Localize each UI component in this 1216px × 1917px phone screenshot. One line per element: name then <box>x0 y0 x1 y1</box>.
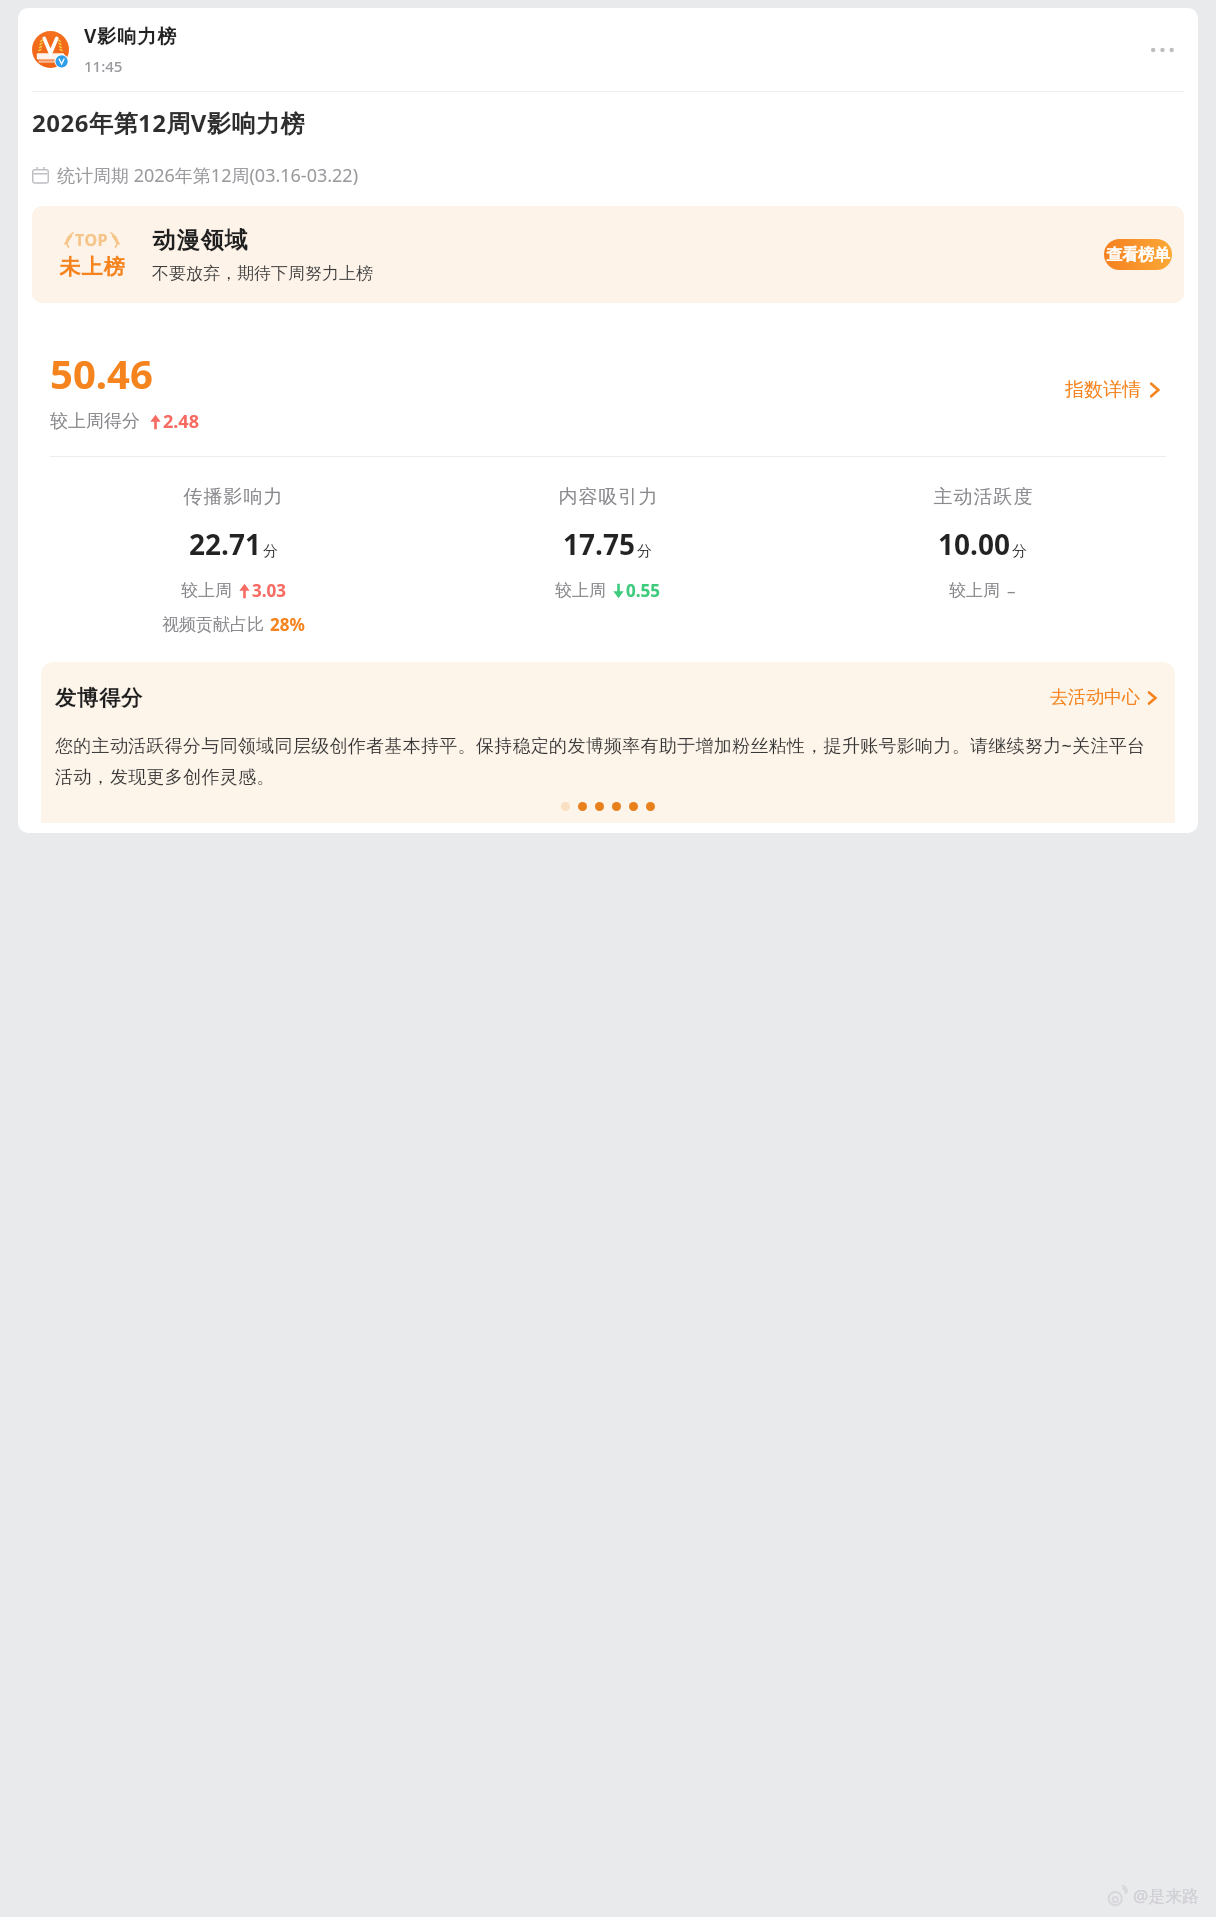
staticText: 发博得分 <box>55 685 1046 711</box>
staticText: 去活动中心 <box>1050 686 1140 709</box>
staticText: 分 <box>1012 542 1027 561</box>
staticText: 2026年第12周V影响力榜 <box>32 106 305 139</box>
staticText: 传播影响力 <box>183 485 283 509</box>
staticText: TOP <box>75 229 109 251</box>
staticText: 分 <box>263 542 278 561</box>
staticText: 较上周 <box>555 580 606 601</box>
staticText: @是来路 <box>1133 1884 1200 1907</box>
staticText: 17.75 <box>563 525 635 563</box>
staticText: 3.03 <box>252 579 286 602</box>
staticText: 28% <box>270 613 305 636</box>
staticText: 未上榜 <box>59 254 125 280</box>
staticText: 动漫领域 <box>152 226 248 255</box>
staticText: V影响力榜 <box>84 23 178 49</box>
button[interactable]: 查看榜单 <box>1104 239 1172 270</box>
staticText: 50.46 <box>50 346 153 400</box>
staticText: 较上周 <box>949 580 1000 601</box>
button[interactable]: 去活动中心 <box>1046 682 1161 713</box>
staticText: 分 <box>637 542 652 561</box>
staticText: 指数详情 <box>1065 378 1141 402</box>
staticText: 查看榜单 <box>1106 245 1170 265</box>
staticText: 2.48 <box>163 409 199 434</box>
button[interactable]: TOP <box>32 206 1184 303</box>
button[interactable]: 指数详情 <box>1059 372 1166 408</box>
staticText: 统计周期 2026年第12周(03.16-03.22) <box>57 163 359 188</box>
staticText: 11:45 <box>84 56 123 76</box>
staticText: 内容吸引力 <box>558 485 658 509</box>
staticText: – <box>1007 579 1016 602</box>
staticText: 主动活跃度 <box>933 485 1033 509</box>
staticText: 10.00 <box>938 525 1010 563</box>
staticText: 较上周得分 <box>50 410 140 433</box>
staticText: 0.55 <box>626 579 660 602</box>
button[interactable]: More options <box>1144 30 1184 70</box>
staticText: 视频贡献占比 <box>162 614 264 635</box>
staticText: 不要放弃，期待下周努力上榜 <box>152 263 373 284</box>
staticText: 22.71 <box>189 525 261 563</box>
staticText: 较上周 <box>181 580 232 601</box>
staticText: 您的主动活跃得分与同领域同层级创作者基本持平。保持稳定的发博频率有助于增加粉丝粘… <box>55 733 1161 788</box>
